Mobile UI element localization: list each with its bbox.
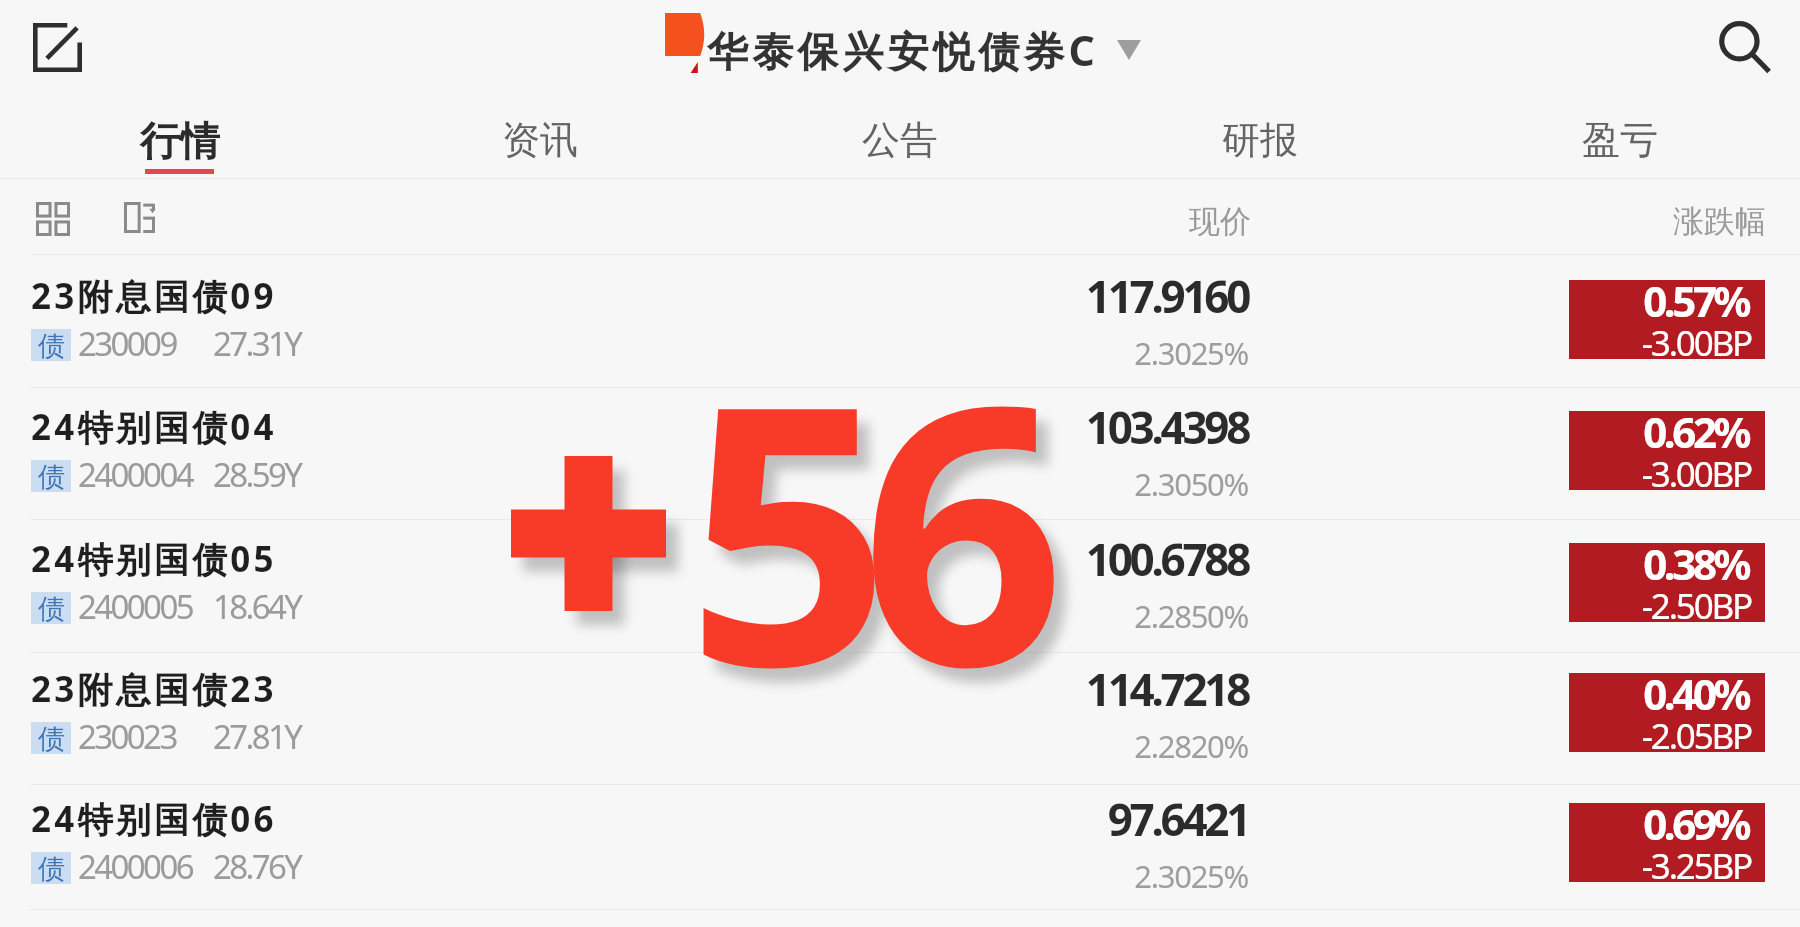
staticText: -3.25BP: [1569, 842, 1751, 890]
staticText: 2.3050%: [848, 463, 1248, 505]
staticText: 债: [38, 592, 65, 624]
button[interactable]: 24特别国债06: [0, 784, 1800, 909]
staticText: -3.00BP: [1569, 319, 1751, 367]
staticText: 230023: [78, 714, 176, 759]
staticText: 0.38%: [1569, 535, 1748, 592]
staticText: 117.9160: [848, 266, 1248, 326]
button[interactable]: 资讯: [360, 96, 720, 179]
staticText: 230009: [78, 321, 176, 366]
staticText: 0.40%: [1569, 665, 1748, 722]
button[interactable]: Switch layout: [109, 187, 169, 247]
staticText: 24特别国债06: [31, 795, 277, 843]
staticText: 债: [38, 329, 65, 361]
staticText: 23附息国债09: [31, 272, 277, 320]
staticText: 27.31Y: [213, 321, 301, 366]
staticText: 0.69%: [1569, 795, 1748, 852]
staticText: 27.81Y: [213, 714, 301, 759]
staticText: 2.2850%: [848, 595, 1248, 637]
staticText: -3.00BP: [1569, 450, 1751, 498]
staticText: -2.05BP: [1569, 712, 1751, 760]
staticText: 56: [686, 282, 1036, 770]
button[interactable]: Search: [1700, 3, 1790, 93]
staticText: 现价: [1189, 202, 1251, 241]
staticText: 2400005: [78, 584, 192, 629]
staticText: 盈亏: [1582, 116, 1658, 164]
staticText: 债: [38, 852, 65, 884]
staticText: 56: [698, 296, 1048, 784]
staticText: 资讯: [502, 116, 578, 164]
staticText: 23附息国债23: [31, 665, 277, 713]
staticText: 华泰保兴安悦债券C: [707, 22, 1100, 78]
button[interactable]: Edit: [12, 2, 102, 92]
staticText: 2.3025%: [848, 332, 1248, 374]
button[interactable]: Grid view: [21, 187, 81, 247]
staticText: 103.4398: [848, 397, 1248, 457]
button[interactable]: 华泰保兴安悦债券C, switch fund: [650, 0, 1155, 96]
staticText: 100.6788: [848, 529, 1248, 589]
button[interactable]: 盈亏: [1440, 96, 1800, 179]
staticText: 2400004: [78, 452, 192, 497]
button[interactable]: 研报: [1080, 96, 1440, 179]
button[interactable]: 24特别国债04: [0, 387, 1800, 519]
staticText: 2.2820%: [848, 725, 1248, 767]
staticText: 24特别国债05: [31, 535, 277, 583]
staticText: 28.59Y: [213, 452, 301, 497]
button[interactable]: 行情: [0, 96, 360, 179]
staticText: 债: [38, 460, 65, 492]
button[interactable]: 23附息国债09: [0, 254, 1800, 387]
staticText: 97.6421: [848, 789, 1248, 849]
staticText: 0.57%: [1569, 272, 1748, 329]
staticText: 行情: [140, 116, 220, 166]
button[interactable]: 24特别国债05: [0, 519, 1800, 652]
staticText: 2.3025%: [848, 855, 1248, 897]
staticText: 28.76Y: [213, 844, 301, 889]
staticText: -2.50BP: [1569, 582, 1751, 630]
staticText: 债: [38, 722, 65, 754]
staticText: 24特别国债04: [31, 403, 277, 451]
button[interactable]: 公告: [720, 96, 1080, 179]
staticText: 公告: [862, 116, 938, 164]
staticText: 18.64Y: [213, 584, 301, 629]
staticText: 研报: [1222, 116, 1298, 164]
button[interactable]: 23附息国债23: [0, 652, 1800, 784]
staticText: 涨跌幅: [1673, 202, 1766, 241]
staticText: 2400006: [78, 844, 192, 889]
staticText: 0.62%: [1569, 403, 1748, 460]
staticText: 114.7218: [848, 659, 1248, 719]
